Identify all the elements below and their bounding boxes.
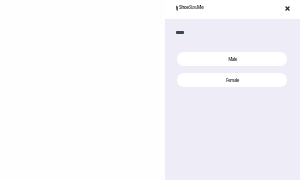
staticText: Male (228, 56, 237, 62)
staticText: ShoeSize.Me (179, 4, 204, 11)
button[interactable]: Close (282, 3, 293, 14)
button[interactable]: Male (177, 52, 287, 66)
staticText: Female (226, 77, 239, 83)
button[interactable]: Female (177, 73, 287, 87)
